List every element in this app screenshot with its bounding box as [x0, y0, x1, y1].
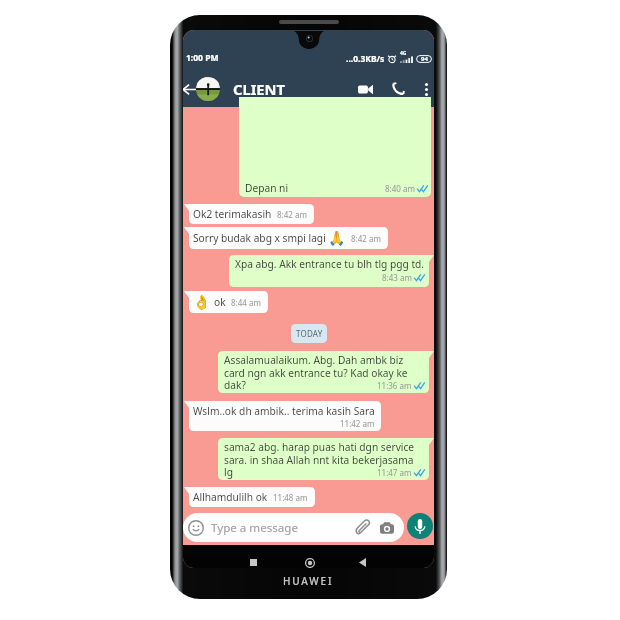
button[interactable]: Voice call [386, 77, 410, 101]
staticText: Type a message [211, 520, 354, 536]
button[interactable]: 👌 [184, 291, 268, 313]
staticText: Allhamdulilh ok [193, 490, 268, 504]
staticText: HUAWEI [283, 574, 334, 588]
staticText: Xpa abg. Akk entrance tu blh tlg pgg td. [235, 257, 425, 271]
staticText: ok [214, 295, 226, 309]
staticText: 11:36 am [377, 380, 412, 391]
button[interactable]: Record voice message [407, 513, 433, 539]
staticText: 8:42 am [277, 209, 307, 220]
button[interactable]: Wslm..ok dh ambik.. terima kasih Sara [184, 401, 381, 431]
button[interactable]: Home [299, 552, 320, 568]
button[interactable]: Allhamdulilh ok [184, 487, 315, 507]
staticText: 11:42 am [340, 418, 375, 429]
staticText: Sorry budak abg x smpi lagi [193, 231, 326, 245]
button[interactable]: Sorry budak abg x smpi lagi [184, 227, 388, 249]
button[interactable]: Back [183, 79, 200, 99]
button[interactable]: Video call [353, 77, 377, 101]
staticText: Depan ni [245, 181, 289, 195]
button[interactable]: Depan ni [239, 97, 431, 197]
staticText: 8:44 am [231, 297, 261, 308]
staticText: Wslm..ok dh ambik.. terima kasih Sara [193, 404, 375, 418]
staticText: Assalamualaikum. Abg. Dah ambk biz card … [224, 353, 425, 392]
staticText: 11:48 am [273, 492, 308, 503]
staticText: sama2 abg. harap puas hati dgn service s… [224, 440, 425, 479]
staticText: 👌 [193, 294, 211, 310]
staticText: 1:00 PM [186, 52, 219, 64]
button[interactable]: Attach [354, 519, 372, 537]
staticText: 🙏 [328, 230, 346, 246]
staticText: 8:40 am [385, 183, 415, 194]
staticText: 8:42 am [351, 233, 381, 244]
button[interactable]: TODAY [291, 324, 327, 343]
button[interactable]: Ok2 terimakasih [184, 204, 314, 224]
button[interactable]: Back [352, 552, 373, 568]
staticText: 11:47 am [377, 467, 412, 478]
other: Emoji [188, 520, 204, 536]
staticText: ...0.3KB/s [346, 53, 385, 65]
button[interactable]: sama2 abg. harap puas hati dgn service s… [218, 438, 434, 480]
button[interactable]: Emoji [183, 513, 404, 542]
button[interactable]: More options [419, 77, 433, 101]
staticText: Ok2 terimakasih [193, 207, 272, 221]
staticText: 8:43 am [382, 272, 412, 283]
button[interactable]: Xpa abg. Akk entrance tu blh tlg pgg td. [229, 255, 434, 287]
staticText: CLIENT [233, 79, 285, 99]
button[interactable]: Camera [378, 519, 396, 537]
staticText: TODAY [296, 328, 323, 339]
staticText: 94 [421, 55, 428, 63]
button[interactable]: Assalamualaikum. Abg. Dah ambk biz card … [218, 351, 434, 393]
button[interactable]: Recent apps [243, 552, 264, 568]
button[interactable]: Contact photo [196, 77, 220, 101]
staticText: 4G [400, 50, 407, 57]
